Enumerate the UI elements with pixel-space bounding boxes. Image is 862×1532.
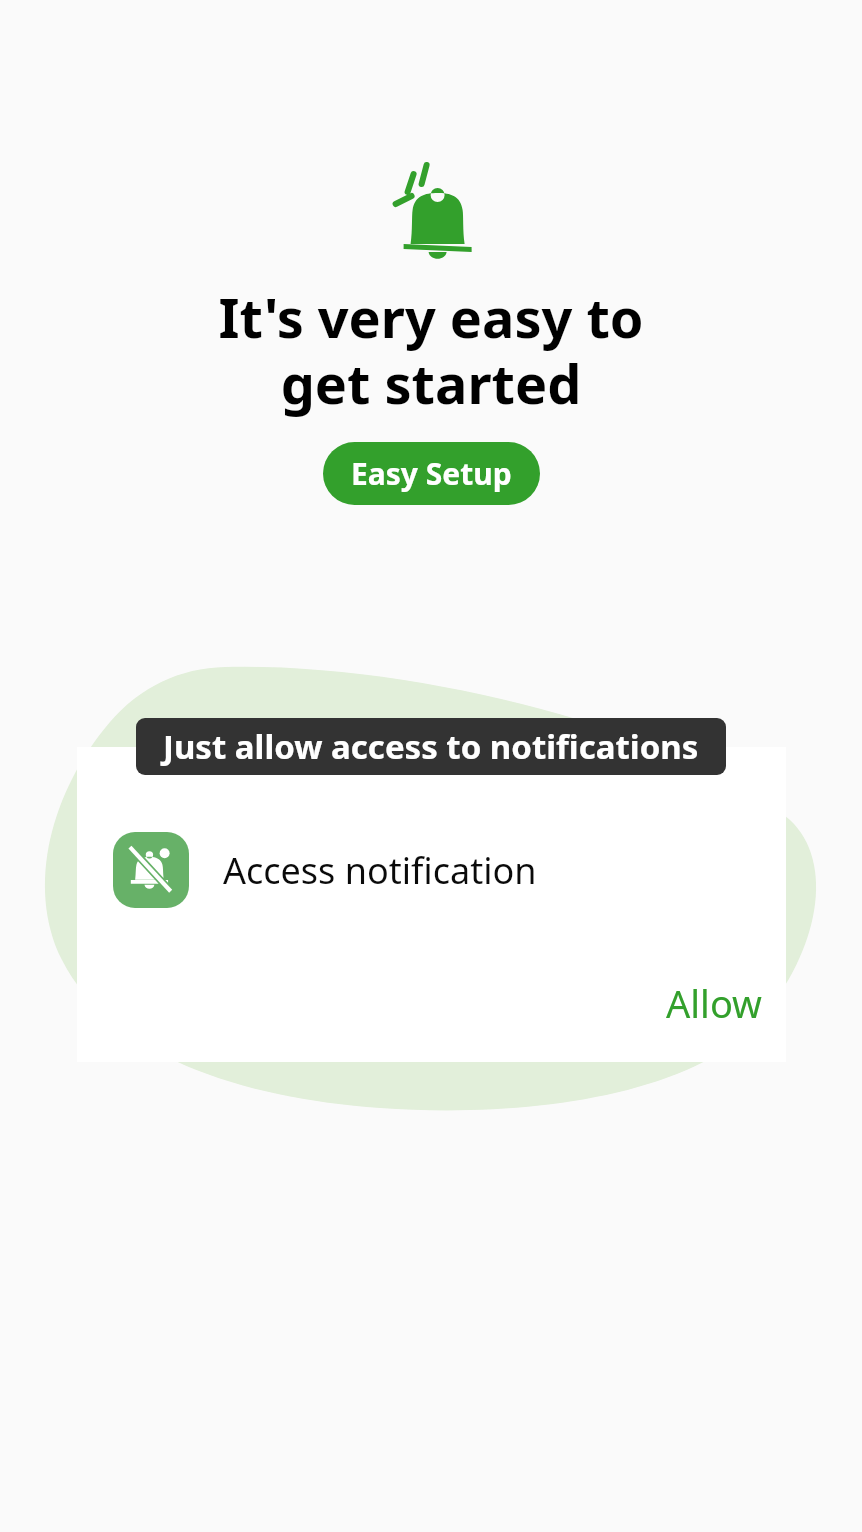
other: Notification access [113, 832, 189, 908]
staticText: Access notification [223, 846, 537, 895]
button[interactable]: Easy Setup [323, 442, 540, 505]
staticText: Just allow access to notifications [163, 724, 699, 769]
button[interactable]: Just allow access to notifications [136, 718, 726, 775]
staticText: Easy Setup [351, 453, 512, 494]
staticText: It's very easy to get started [218, 280, 644, 420]
staticText: Allow [666, 977, 762, 1029]
button[interactable]: Allow [642, 969, 786, 1037]
button[interactable]: Notification access [77, 826, 786, 914]
